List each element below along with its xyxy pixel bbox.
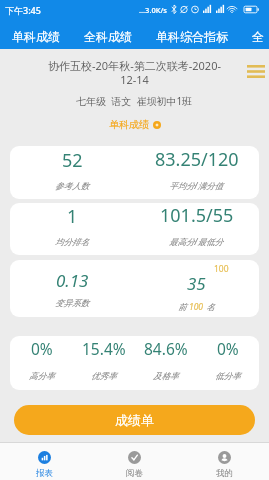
button[interactable]: More options xyxy=(244,60,268,82)
staticText: 全科成绩 xyxy=(84,29,132,44)
staticText: 均分排名 xyxy=(55,237,89,248)
button[interactable]: 阅卷 xyxy=(89,443,179,480)
staticText: 单科成绩 xyxy=(109,118,149,131)
button[interactable]: 0.13 xyxy=(10,260,259,317)
staticText: 成绩单 xyxy=(115,412,154,428)
staticText: 及格率 xyxy=(153,371,179,382)
staticText: 全科综合指标 xyxy=(252,29,257,44)
button[interactable]: 52 xyxy=(10,146,259,199)
button[interactable]: 我的 xyxy=(179,443,269,480)
staticText: 下午3:45 xyxy=(5,4,41,16)
staticText: 最高分/最低分 xyxy=(169,236,224,248)
button[interactable]: 全科综合指标 xyxy=(240,19,269,49)
staticText: 35 xyxy=(187,272,206,295)
staticText: 100 xyxy=(214,263,229,275)
staticText: 报表 xyxy=(36,468,53,479)
button[interactable]: 单科成绩 xyxy=(0,19,72,49)
staticText: ...3.0K/s xyxy=(139,5,168,15)
button[interactable]: 报表 xyxy=(0,443,89,480)
button[interactable]: 1 xyxy=(10,203,259,255)
staticText: 我的 xyxy=(216,468,233,479)
staticText: 单科成绩 xyxy=(12,29,60,44)
staticText: 52 xyxy=(62,148,83,173)
staticText: 低分率 xyxy=(215,371,241,382)
staticText: 1 xyxy=(67,204,78,229)
staticText: 七年级 语文 崔坝初中1班 xyxy=(76,94,193,108)
staticText: 优秀率 xyxy=(91,371,117,382)
staticText: 15.4% xyxy=(82,338,126,359)
button[interactable]: 全科成绩 xyxy=(72,19,144,49)
button[interactable]: 成绩单 xyxy=(14,405,255,435)
staticText: 名 xyxy=(204,301,215,313)
staticText: 前 xyxy=(178,301,189,313)
staticText: 0% xyxy=(217,338,239,359)
staticText: 84.6% xyxy=(144,338,188,359)
staticText: 100 xyxy=(189,301,204,313)
staticText: 101.5/55 xyxy=(160,203,234,228)
staticText: 变异系数 xyxy=(55,298,89,309)
staticText: 参考人数 xyxy=(55,181,89,192)
staticText: 0% xyxy=(31,338,53,359)
staticText: 83.25/120 xyxy=(155,147,239,172)
button[interactable]: 0% xyxy=(10,336,259,390)
button[interactable]: 单科综合指标 xyxy=(144,19,240,49)
staticText: 高分率 xyxy=(29,371,55,382)
staticText: 阅卷 xyxy=(126,468,143,479)
staticText: 0.13 xyxy=(56,269,89,292)
staticText: 平均分/满分值 xyxy=(169,180,224,192)
staticText: 单科综合指标 xyxy=(156,29,228,44)
staticText: 协作五校-20年秋-第二次联考-2020- 12-14 xyxy=(0,58,269,87)
